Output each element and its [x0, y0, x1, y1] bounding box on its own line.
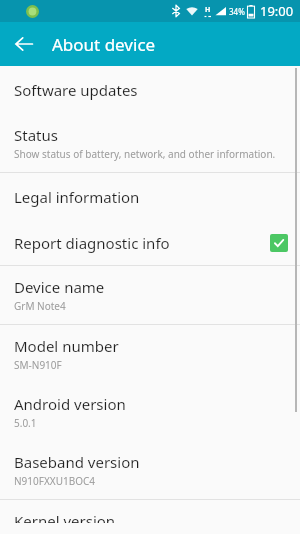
staticText: Device name — [14, 277, 105, 297]
staticText: Legal information — [14, 187, 140, 207]
staticText: 19:00 — [260, 2, 294, 20]
button[interactable]: Model number — [0, 325, 300, 383]
staticText: 34% — [229, 6, 245, 17]
button[interactable]: Android version — [0, 383, 300, 441]
staticText: Software updates — [14, 80, 138, 100]
staticText: Android version — [14, 394, 126, 414]
staticText: Show status of battery, network, and oth… — [14, 147, 276, 161]
staticText: About device — [52, 33, 156, 56]
button[interactable]: Legal information — [0, 173, 300, 221]
button[interactable]: Report diagnostic info — [0, 221, 300, 265]
button[interactable]: Baseband version — [0, 441, 300, 499]
button[interactable]: Software updates — [0, 66, 300, 114]
staticText: N910FXXU1BOC4 — [14, 474, 96, 488]
button[interactable]: Kernel version — [0, 500, 300, 534]
staticText: Status — [14, 125, 58, 145]
staticText: GrM Note4 — [14, 299, 66, 313]
staticText: 5.0.1 — [14, 416, 37, 430]
staticText: SM-N910F — [14, 358, 62, 372]
staticText: Model number — [14, 336, 119, 356]
button[interactable]: Back — [6, 26, 42, 62]
button[interactable]: Device name — [0, 266, 300, 324]
staticText: Baseband version — [14, 452, 140, 472]
staticText: H — [205, 5, 211, 15]
staticText: Report diagnostic info — [14, 233, 270, 253]
staticText: Kernel version — [14, 511, 116, 523]
button[interactable]: Status — [0, 114, 300, 172]
